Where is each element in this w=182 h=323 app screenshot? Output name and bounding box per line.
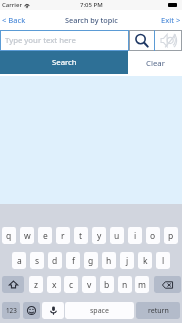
- button[interactable]: l: [156, 252, 170, 269]
- button[interactable]: Exit >: [157, 12, 182, 28]
- staticText: Type your text here: [5, 35, 76, 46]
- button[interactable]: Backspace: [154, 276, 181, 293]
- button[interactable]: t: [74, 227, 88, 244]
- staticText: o: [150, 230, 156, 242]
- staticText: u: [114, 230, 120, 242]
- staticText: p: [168, 230, 174, 242]
- staticText: return: [148, 306, 169, 316]
- button[interactable]: u: [110, 227, 124, 244]
- button[interactable]: Search: [130, 31, 154, 50]
- staticText: a: [17, 255, 22, 267]
- staticText: Exit >: [161, 15, 181, 25]
- button[interactable]: k: [138, 252, 152, 269]
- staticText: m: [138, 279, 146, 291]
- staticText: e: [43, 230, 48, 242]
- staticText: y: [97, 230, 102, 242]
- button[interactable]: h: [102, 252, 116, 269]
- button[interactable]: g: [84, 252, 98, 269]
- staticText: Clear: [146, 58, 165, 69]
- staticText: x: [52, 279, 57, 291]
- button[interactable]: i: [128, 227, 142, 244]
- staticText: q: [6, 230, 12, 242]
- staticText: Carrier: [2, 1, 22, 9]
- button[interactable]: b: [100, 276, 114, 293]
- staticText: < Back: [2, 15, 26, 25]
- staticText: c: [69, 279, 74, 291]
- staticText: h: [106, 255, 112, 267]
- button[interactable]: w: [20, 227, 34, 244]
- button[interactable]: c: [64, 276, 78, 293]
- staticText: 123: [6, 306, 17, 315]
- staticText: j: [126, 255, 129, 267]
- staticText: b: [104, 279, 110, 291]
- button[interactable]: space: [65, 302, 134, 319]
- button[interactable]: return: [136, 302, 180, 319]
- staticText: space: [90, 306, 109, 316]
- staticText: g: [88, 255, 94, 267]
- staticText: 7:05 PM: [80, 1, 103, 9]
- button[interactable]: 123: [2, 302, 20, 319]
- button[interactable]: o: [146, 227, 160, 244]
- button[interactable]: Clear: [128, 51, 182, 75]
- button[interactable]: Type your text here: [1, 31, 128, 50]
- button[interactable]: e: [38, 227, 52, 244]
- staticText: n: [122, 279, 128, 291]
- button[interactable]: z: [29, 276, 43, 293]
- staticText: z: [34, 279, 38, 291]
- staticText: Search by topic: [65, 15, 118, 25]
- staticText: v: [87, 279, 92, 291]
- staticText: s: [35, 255, 40, 267]
- staticText: f: [72, 255, 75, 267]
- button[interactable]: j: [120, 252, 134, 269]
- button[interactable]: v: [82, 276, 96, 293]
- staticText: Search: [52, 57, 77, 68]
- button[interactable]: m: [135, 276, 149, 293]
- button[interactable]: Mute audio: [155, 31, 181, 50]
- button[interactable]: < Back: [0, 12, 30, 28]
- staticText: t: [79, 230, 83, 242]
- button[interactable]: x: [47, 276, 61, 293]
- button[interactable]: q: [2, 227, 16, 244]
- staticText: i: [134, 230, 137, 242]
- button[interactable]: a: [12, 252, 26, 269]
- button[interactable]: f: [66, 252, 80, 269]
- button[interactable]: d: [48, 252, 62, 269]
- staticText: k: [143, 255, 148, 267]
- button[interactable]: Shift: [2, 276, 24, 293]
- staticText: d: [52, 255, 58, 267]
- button[interactable]: Emoji: [23, 302, 40, 319]
- button[interactable]: Dictate: [42, 302, 64, 319]
- button[interactable]: r: [56, 227, 70, 244]
- button[interactable]: y: [92, 227, 106, 244]
- button[interactable]: p: [164, 227, 178, 244]
- button[interactable]: s: [30, 252, 44, 269]
- staticText: w: [24, 230, 31, 242]
- button[interactable]: n: [118, 276, 132, 293]
- staticText: r: [61, 230, 65, 242]
- staticText: l: [162, 255, 165, 267]
- button[interactable]: Search: [0, 51, 128, 74]
